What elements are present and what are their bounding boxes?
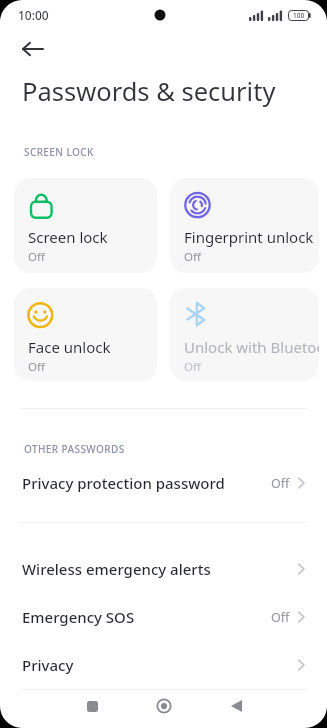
staticText: Passwords & security [22, 74, 276, 109]
button[interactable]: Privacy protection password [0, 459, 327, 507]
staticText: Off [28, 359, 45, 375]
button[interactable] [142, 684, 186, 728]
button[interactable] [14, 36, 52, 62]
button[interactable] [70, 684, 114, 728]
staticText: Off [271, 609, 290, 626]
staticText: Off [28, 249, 45, 265]
staticText: Unlock with Bluetooth device [184, 337, 319, 357]
staticText: 100 [293, 11, 305, 20]
staticText: Privacy [22, 655, 74, 675]
button[interactable]: Wireless emergency alerts [0, 545, 327, 593]
staticText: 10:00 [18, 7, 49, 23]
button[interactable] [214, 684, 258, 728]
button[interactable]: Screen lock [14, 178, 157, 273]
button[interactable]: Privacy [0, 641, 327, 689]
button[interactable]: Unlock with Bluetooth device [170, 288, 319, 381]
staticText: Off [271, 475, 290, 492]
staticText: Off [184, 249, 201, 265]
button[interactable]: Face unlock [14, 288, 157, 381]
button[interactable]: Fingerprint unlock [170, 178, 319, 273]
staticText: Privacy protection password [22, 473, 225, 493]
button[interactable]: Emergency SOS [0, 593, 327, 641]
staticText: Face unlock [28, 337, 111, 357]
staticText: OTHER PASSWORDS [24, 442, 125, 456]
staticText: Wireless emergency alerts [22, 559, 211, 579]
staticText: Emergency SOS [22, 607, 135, 627]
staticText: Fingerprint unlock [184, 227, 314, 247]
staticText: SCREEN LOCK [24, 145, 94, 159]
staticText: Screen lock [28, 227, 108, 247]
staticText: Off [184, 359, 201, 375]
